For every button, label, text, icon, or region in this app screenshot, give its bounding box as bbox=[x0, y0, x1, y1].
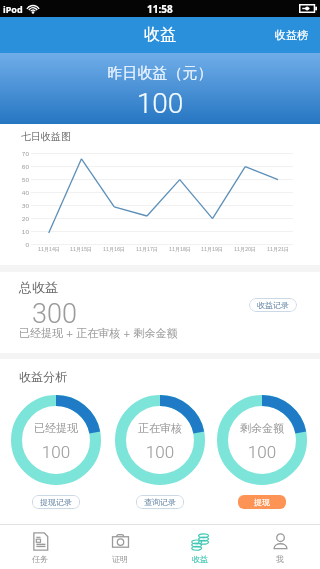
staticText: 11月17日 bbox=[131, 246, 163, 252]
staticText: 已经提现 bbox=[16, 421, 96, 435]
button[interactable]: 提现 bbox=[238, 495, 286, 509]
staticText: 11月21日 bbox=[262, 246, 294, 252]
staticText: 正在审核 bbox=[120, 421, 200, 435]
button[interactable]: 提现记录 bbox=[32, 495, 80, 509]
staticText: 100 bbox=[120, 442, 200, 462]
staticText: 11月16日 bbox=[98, 246, 130, 252]
staticText: 11月18日 bbox=[164, 246, 196, 252]
button[interactable]: 收益榜 bbox=[263, 20, 320, 50]
staticText: 11月14日 bbox=[33, 246, 65, 252]
staticText: 我 bbox=[276, 554, 284, 564]
staticText: 总收益 bbox=[19, 279, 58, 295]
staticText: 已经提现 + 正在审核 + 剩余金额 bbox=[19, 326, 178, 340]
staticText: 任务 bbox=[32, 554, 48, 564]
staticText: 300 bbox=[32, 298, 77, 330]
staticText: 11月20日 bbox=[229, 246, 261, 252]
staticText: 11:58 bbox=[147, 2, 173, 16]
staticText: 剩余金额 bbox=[222, 421, 302, 435]
staticText: 收益 bbox=[192, 554, 208, 564]
button[interactable]: 收益记录 bbox=[249, 298, 297, 312]
button[interactable]: 证明 bbox=[80, 525, 160, 569]
staticText: 收益记录 bbox=[257, 300, 289, 310]
staticText: 70 bbox=[13, 150, 29, 158]
staticText: 提现 bbox=[254, 497, 270, 507]
staticText: 昨日收益（元） bbox=[0, 64, 320, 83]
staticText: 100 bbox=[0, 87, 320, 120]
staticText: 30 bbox=[13, 202, 29, 210]
staticText: 100 bbox=[222, 442, 302, 462]
staticText: 七日收益图 bbox=[21, 130, 71, 143]
staticText: 40 bbox=[13, 189, 29, 197]
staticText: iPod bbox=[3, 3, 23, 15]
staticText: 11月19日 bbox=[196, 246, 228, 252]
staticText: 收益 bbox=[144, 25, 176, 45]
button[interactable]: 收益 bbox=[160, 525, 240, 569]
staticText: 100 bbox=[16, 442, 96, 462]
staticText: 证明 bbox=[112, 554, 128, 564]
button[interactable]: 任务 bbox=[0, 525, 80, 569]
staticText: 11月15日 bbox=[65, 246, 97, 252]
staticText: 提现记录 bbox=[40, 497, 72, 507]
button[interactable]: 我 bbox=[240, 525, 320, 569]
staticText: 收益分析 bbox=[19, 369, 67, 384]
button[interactable]: 查询记录 bbox=[136, 495, 184, 509]
staticText: 收益榜 bbox=[275, 28, 308, 42]
staticText: 10 bbox=[13, 228, 29, 236]
staticText: 60 bbox=[13, 163, 29, 171]
staticText: 50 bbox=[13, 176, 29, 184]
staticText: 20 bbox=[13, 215, 29, 223]
staticText: 查询记录 bbox=[144, 497, 176, 507]
staticText: 0 bbox=[13, 241, 29, 249]
